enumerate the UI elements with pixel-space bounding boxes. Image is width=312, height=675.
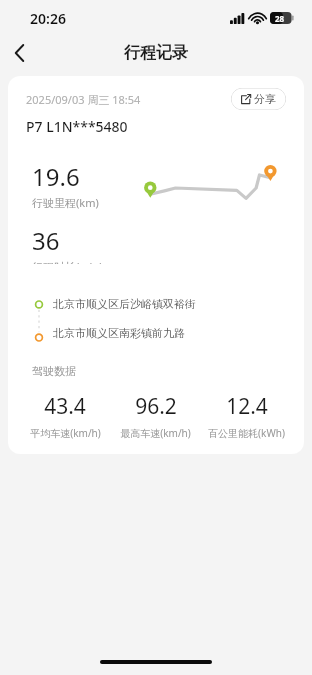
staticText: 36: [32, 224, 60, 257]
staticText: 19.6: [32, 160, 80, 193]
staticText: 43.4: [44, 392, 86, 421]
button[interactable]: Back: [0, 36, 38, 70]
staticText: 行驶里程(km): [32, 195, 99, 210]
staticText: 百公里能耗(kWh): [208, 426, 285, 440]
staticText: 北京市顺义区南彩镇前九路: [53, 326, 185, 340]
staticText: 分享: [254, 92, 276, 106]
button[interactable]: 分享: [231, 88, 286, 110]
staticText: 北京市顺义区后沙峪镇双裕街: [53, 297, 196, 311]
staticText: 最高车速(km/h): [120, 426, 191, 440]
staticText: 行程记录: [124, 43, 188, 63]
staticText: P7 L1N***5480: [26, 117, 128, 136]
staticText: 2025/09/03 周三 18:54: [26, 92, 141, 107]
staticText: 12.4: [226, 392, 268, 421]
staticText: 28: [275, 13, 285, 24]
staticText: 驾驶数据: [32, 364, 76, 378]
staticText: 行程时长(min): [32, 259, 103, 264]
staticText: 96.2: [135, 392, 177, 421]
staticText: 平均车速(km/h): [30, 426, 101, 440]
staticText: 20:26: [30, 9, 66, 28]
